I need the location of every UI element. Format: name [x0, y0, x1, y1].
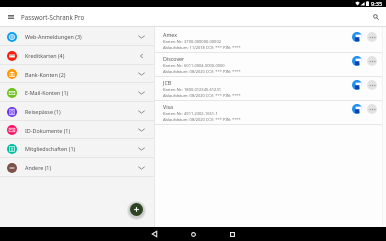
button[interactable]: Back	[135, 227, 174, 241]
button[interactable]: More options	[367, 80, 377, 90]
button[interactable]: E-Mail-Konten (1)	[0, 83, 155, 102]
button[interactable]: More options	[367, 32, 377, 42]
button[interactable]: Copy	[352, 32, 362, 42]
staticText: Amex	[163, 31, 178, 38]
staticText: JCB	[163, 79, 172, 86]
staticText: Visa	[163, 103, 174, 110]
button[interactable]: Visa	[155, 101, 386, 125]
staticText: Web-Anmeldungen (3)	[25, 33, 82, 40]
button[interactable]: Add	[130, 203, 143, 216]
button[interactable]: Copy	[352, 80, 362, 90]
staticText: Andere (1)	[25, 164, 52, 171]
button[interactable]: Andere (1)	[0, 158, 155, 177]
staticText: Ablaufdatum: 11/2018 CCV: *** PIN: ****	[163, 45, 241, 50]
button[interactable]: Bank-Konten (2)	[0, 65, 155, 83]
button[interactable]: Discover	[155, 53, 386, 77]
staticText: Karten-Nr.: 4911-2302-1651-1	[163, 111, 218, 116]
staticText: Karten-Nr.: 6011-0004-0000-0000	[163, 63, 225, 68]
button[interactable]: Kreditkarten (4)	[0, 46, 155, 65]
button[interactable]: Home	[174, 227, 213, 241]
button[interactable]: JCB	[155, 77, 386, 101]
staticText: Ablaufdatum: 08/2020 CCV: *** PIN: ****	[163, 93, 241, 98]
button[interactable]: More options	[367, 104, 377, 114]
button[interactable]: Reisepässe (1)	[0, 102, 155, 121]
staticText: Discover	[163, 55, 185, 62]
button[interactable]: Amex	[155, 29, 386, 53]
button[interactable]: Mitgliedschaften (1)	[0, 139, 155, 158]
staticText: E-Mail-Konten (1)	[25, 89, 69, 96]
staticText: Bank-Konten (2)	[25, 71, 66, 78]
staticText: 9:35	[371, 0, 383, 7]
button[interactable]: Copy	[352, 56, 362, 66]
staticText: Karten-Nr.: 3700-000000-00002	[163, 39, 221, 44]
staticText: Mitgliedschaften (1)	[25, 145, 76, 152]
staticText: Ablaufdatum: 08/2020 CCV: *** PIN: ****	[163, 69, 241, 74]
staticText: Kreditkarten (4)	[25, 52, 65, 59]
button[interactable]: Search	[366, 7, 386, 27]
staticText: Reisepässe (1)	[25, 108, 61, 115]
button[interactable]: ID-Dokumente (1)	[0, 121, 155, 139]
button[interactable]: Menu	[0, 7, 21, 27]
staticText: ID-Dokumente (1)	[25, 127, 71, 134]
staticText: Passwort-Schrank Pro	[21, 13, 85, 21]
staticText: Ablaufdatum: 08/2020 CCV: *** PIN: ****	[163, 117, 241, 122]
button[interactable]: More options	[367, 56, 377, 66]
staticText: Karten-Nr.: 1800-012345-61231	[163, 87, 221, 92]
button[interactable]: Recents	[213, 227, 252, 241]
button[interactable]: Copy	[352, 104, 362, 114]
button[interactable]: Web-Anmeldungen (3)	[0, 27, 155, 46]
